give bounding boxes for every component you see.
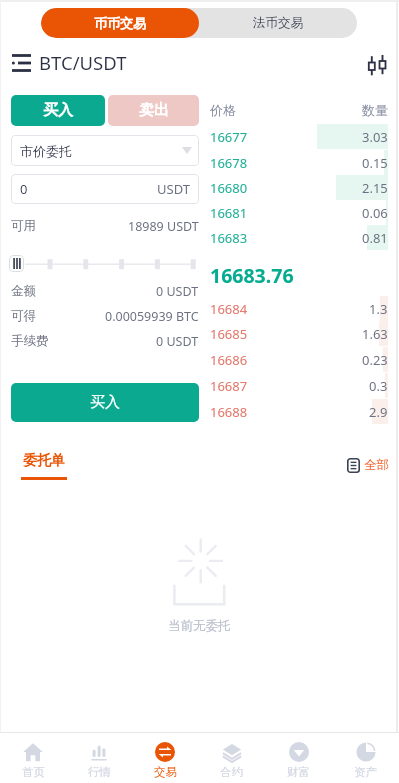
button[interactable]: 16686: [210, 347, 388, 372]
staticText: 数量: [362, 102, 388, 118]
button[interactable]: 卖出: [108, 95, 199, 126]
staticText: 16688: [210, 403, 248, 421]
staticText: 0.15: [362, 154, 388, 172]
staticText: 资产: [354, 765, 377, 779]
button[interactable]: 行情: [66, 737, 132, 783]
staticText: 2.9: [369, 403, 388, 421]
staticText: 18989 USDT: [128, 218, 199, 234]
staticText: 16683.76: [210, 262, 294, 285]
button[interactable]: 币币交易: [41, 8, 199, 38]
staticText: 16680: [210, 179, 248, 197]
button[interactable]: 财富: [265, 737, 332, 783]
button[interactable]: 市价委托: [11, 135, 199, 166]
button[interactable]: 16680: [210, 175, 388, 200]
button[interactable]: 16684: [210, 296, 388, 321]
staticText: 法币交易: [253, 15, 303, 31]
staticText: 可用: [11, 218, 36, 234]
staticText: 16684: [210, 300, 248, 318]
staticText: 0.06: [362, 204, 388, 222]
staticText: 当前无委托: [168, 618, 231, 634]
button[interactable]: 买入: [11, 383, 199, 422]
button[interactable]: 买入: [11, 95, 105, 126]
staticText: 价格: [210, 102, 236, 118]
staticText: 16687: [210, 377, 248, 395]
staticText: 16683: [210, 229, 248, 247]
button[interactable]: 0: [11, 174, 199, 204]
button[interactable]: 16687: [210, 373, 388, 398]
staticText: 3.03: [362, 128, 388, 146]
button[interactable]: 交易: [132, 737, 198, 783]
button[interactable]: 首页: [0, 737, 66, 783]
button[interactable]: 法币交易: [199, 8, 357, 38]
button[interactable]: 16685: [210, 321, 388, 346]
button[interactable]: 合约: [198, 737, 265, 783]
staticText: 合约: [220, 765, 243, 779]
staticText: 1.3: [369, 300, 388, 318]
staticText: 委托单: [23, 452, 65, 470]
staticText: 0 USDT: [156, 333, 199, 349]
button[interactable]: 全部: [347, 456, 389, 474]
staticText: 市价委托: [20, 143, 72, 159]
button[interactable]: 16677: [210, 124, 388, 149]
button[interactable]: 资产: [332, 737, 399, 783]
staticText: 16685: [210, 325, 248, 343]
staticText: 卖出: [139, 101, 169, 120]
staticText: 0.00059939 BTC: [105, 308, 199, 324]
staticText: 全部: [364, 457, 389, 473]
staticText: 1.63: [362, 325, 388, 343]
staticText: 买入: [43, 101, 73, 120]
button[interactable]: Amount slider: [9, 255, 24, 272]
button[interactable]: Market list: [8, 48, 35, 77]
button[interactable]: Chart: [360, 48, 388, 76]
staticText: 16677: [210, 128, 248, 146]
staticText: 0.23: [362, 351, 388, 369]
staticText: 金额: [11, 283, 36, 299]
staticText: 0.81: [362, 229, 388, 247]
button[interactable]: 16678: [210, 150, 388, 175]
staticText: 16686: [210, 351, 248, 369]
staticText: BTC/USDT: [39, 50, 127, 75]
staticText: 买入: [90, 393, 120, 412]
staticText: 0 USDT: [156, 283, 199, 299]
button[interactable]: 16681: [210, 200, 388, 225]
staticText: USDT: [157, 180, 190, 198]
staticText: 财富: [287, 765, 310, 779]
button[interactable]: 16688: [210, 399, 388, 424]
staticText: 16678: [210, 154, 248, 172]
staticText: 可得: [11, 308, 36, 324]
staticText: 0: [20, 180, 28, 198]
button[interactable]: 16683: [210, 225, 388, 250]
staticText: 交易: [154, 765, 177, 779]
staticText: 2.15: [362, 179, 388, 197]
staticText: 币币交易: [94, 15, 146, 31]
button[interactable]: 委托单: [21, 452, 67, 480]
staticText: 首页: [22, 765, 45, 779]
staticText: 手续费: [11, 333, 49, 349]
staticText: 16681: [210, 204, 248, 222]
staticText: 行情: [88, 765, 111, 779]
staticText: 0.3: [369, 377, 388, 395]
